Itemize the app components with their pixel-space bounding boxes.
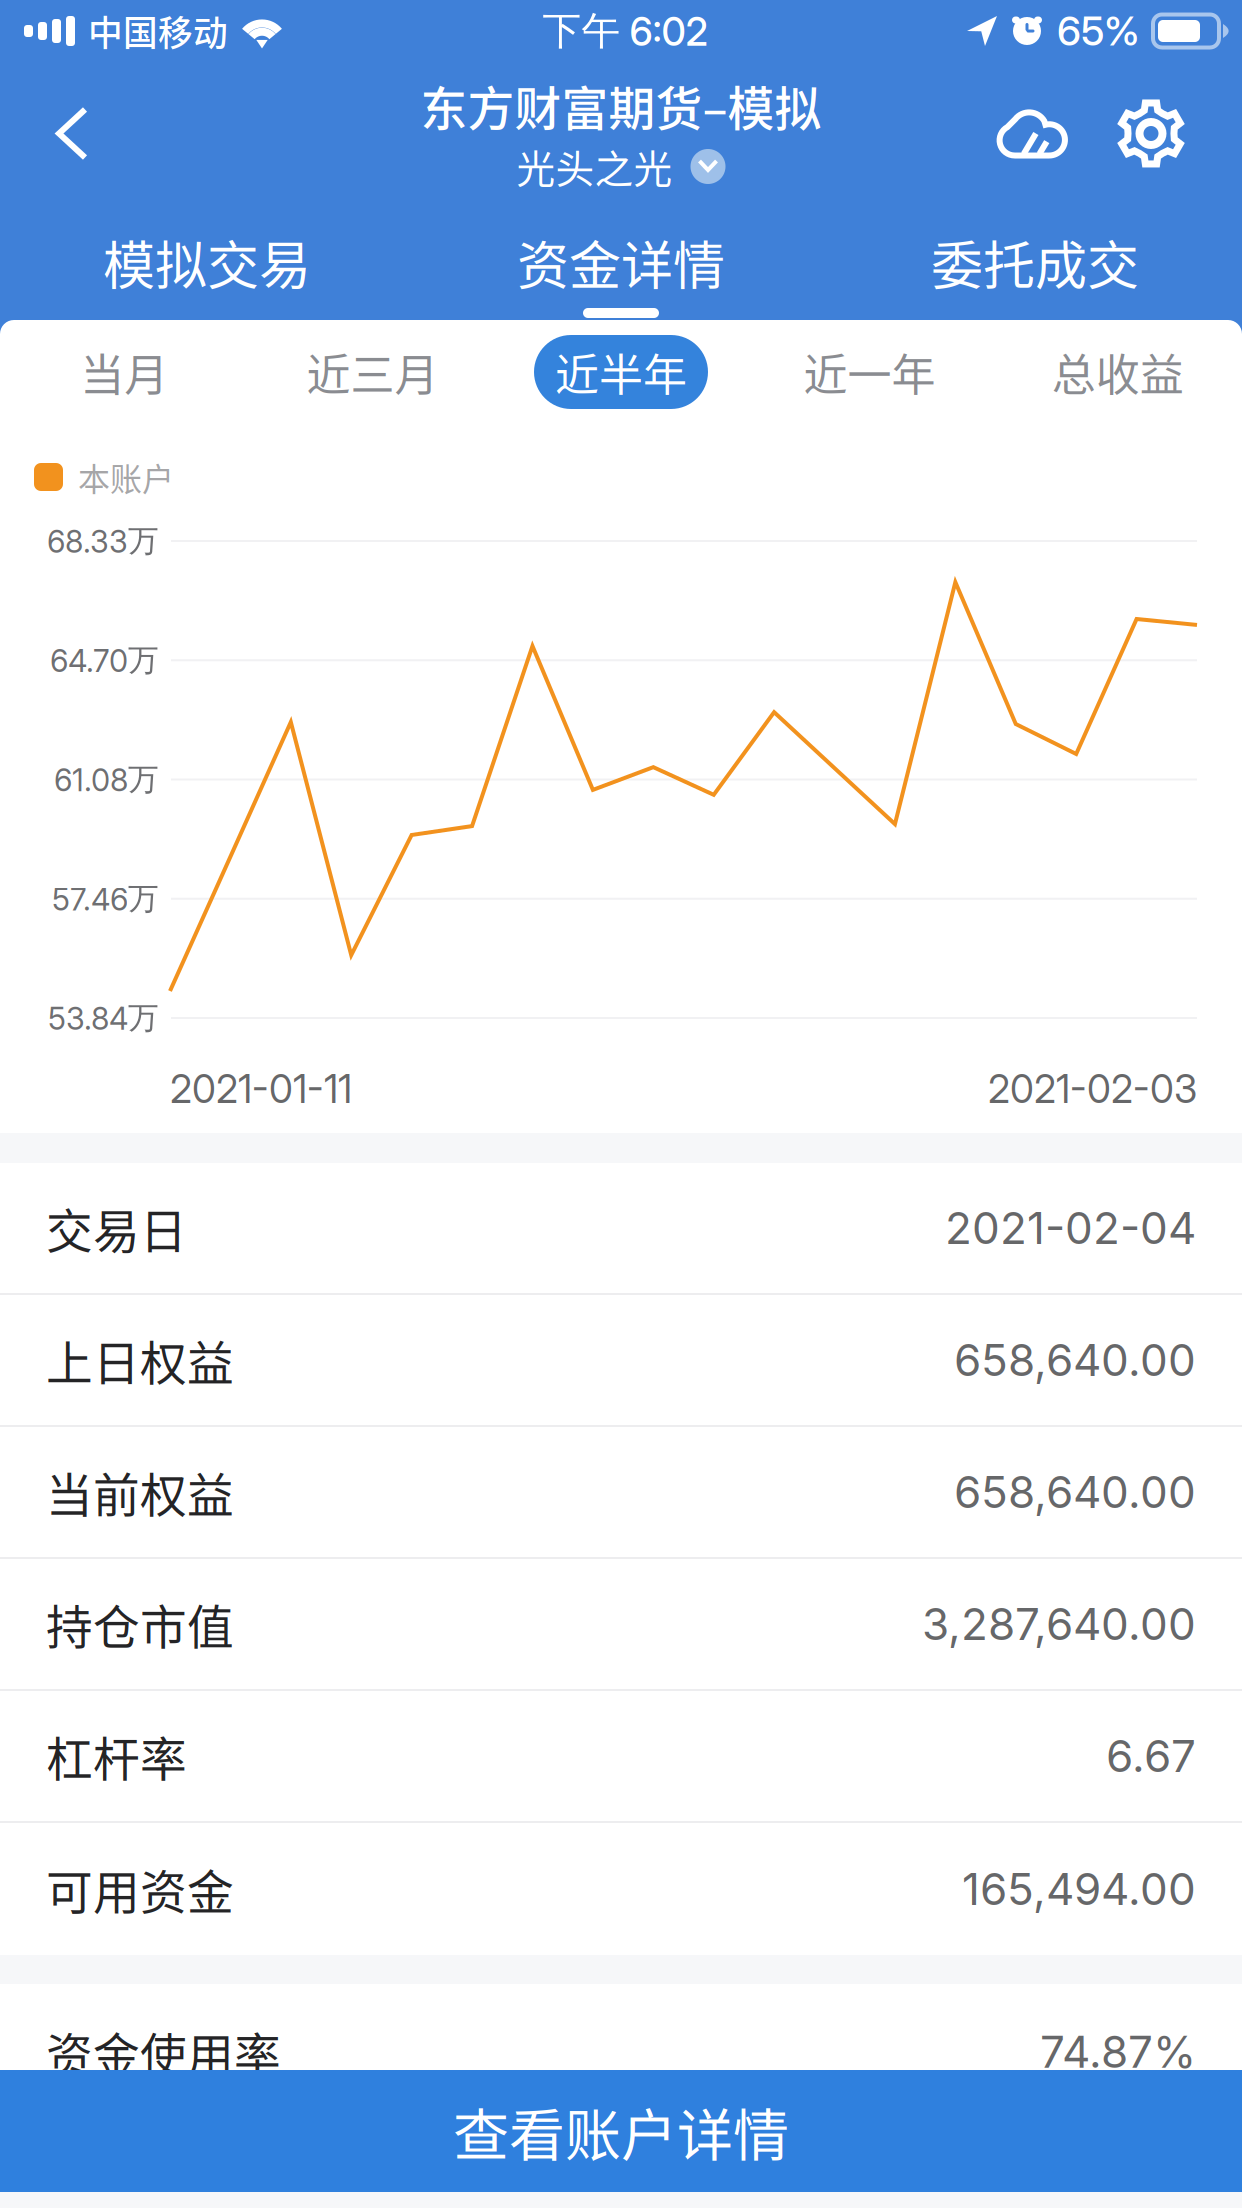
button[interactable]: 杠杆率 xyxy=(0,1691,1242,1823)
button[interactable]: 模拟交易 xyxy=(0,205,414,320)
button[interactable]: 当月 xyxy=(0,320,248,440)
staticText: 2021-02-03 xyxy=(988,1066,1197,1112)
button[interactable]: 查看账户详情 xyxy=(0,2070,1242,2192)
button[interactable]: 持仓市值 xyxy=(0,1559,1242,1691)
staticText: 下午 6:02 xyxy=(542,7,707,55)
staticText: 模拟交易 xyxy=(103,224,311,300)
staticText: 中国移动 xyxy=(88,6,228,56)
staticText: 近半年 xyxy=(555,340,687,404)
staticText: 资金详情 xyxy=(517,224,725,300)
button[interactable]: 资金详情 xyxy=(414,205,828,320)
button[interactable]: 资金使用率 xyxy=(0,1984,1242,2070)
staticText: 近三月 xyxy=(307,340,439,404)
staticText: 3,287,640.00 xyxy=(922,1597,1196,1651)
staticText: 当月 xyxy=(80,340,168,404)
staticText: 上日权益 xyxy=(46,1326,234,1394)
staticText: 本账户 xyxy=(78,454,174,500)
staticText: 光头之光 xyxy=(516,138,672,194)
button[interactable]: Cloud sync xyxy=(970,73,1096,193)
staticText: 61.08万 xyxy=(54,760,159,799)
staticText: 可用资金 xyxy=(46,1855,234,1923)
staticText: 当前权益 xyxy=(46,1458,234,1526)
staticText: 总收益 xyxy=(1052,340,1184,404)
staticText: 2021-01-11 xyxy=(170,1066,352,1112)
staticText: 65% xyxy=(1057,7,1140,55)
button[interactable]: 交易日 xyxy=(0,1163,1242,1295)
staticText: 64.70万 xyxy=(50,641,159,679)
button[interactable]: Settings xyxy=(1096,75,1206,191)
button[interactable]: 总收益 xyxy=(994,320,1242,440)
button[interactable]: 近一年 xyxy=(745,320,994,440)
staticText: 东方财富期货–模拟 xyxy=(420,72,821,139)
staticText: 53.84万 xyxy=(48,999,159,1037)
staticText: 658,640.00 xyxy=(954,1465,1196,1519)
staticText: 持仓市值 xyxy=(46,1590,234,1658)
button[interactable]: 上日权益 xyxy=(0,1295,1242,1427)
button[interactable]: 委托成交 xyxy=(828,205,1242,320)
staticText: 查看账户详情 xyxy=(453,2090,789,2172)
staticText: 68.33万 xyxy=(47,522,159,560)
staticText: 委托成交 xyxy=(931,224,1139,300)
staticText: 165,494.00 xyxy=(962,1862,1196,1916)
button[interactable]: Back xyxy=(0,70,144,196)
staticText: 6.67 xyxy=(1106,1729,1196,1783)
staticText: 交易日 xyxy=(46,1194,187,1262)
button[interactable]: 可用资金 xyxy=(0,1823,1242,1955)
button[interactable]: 近三月 xyxy=(248,320,497,440)
staticText: 2021-02-04 xyxy=(945,1201,1196,1255)
staticText: 杠杆率 xyxy=(46,1722,187,1790)
staticText: 近一年 xyxy=(803,340,935,404)
staticText: 资金使用率 xyxy=(46,2018,281,2086)
staticText: 74.87% xyxy=(1040,2025,1196,2078)
button[interactable]: 近半年 xyxy=(497,320,745,440)
staticText: 57.46万 xyxy=(52,879,159,918)
button[interactable]: 当前权益 xyxy=(0,1427,1242,1559)
staticText: 658,640.00 xyxy=(954,1333,1196,1387)
